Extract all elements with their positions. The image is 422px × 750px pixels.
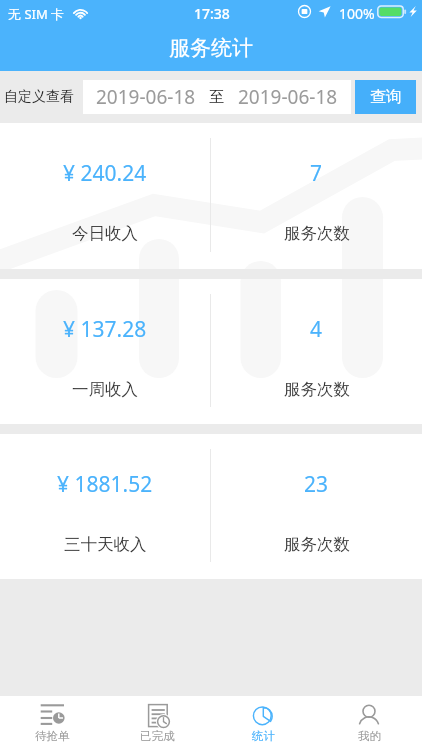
staticText: 统计 bbox=[252, 729, 275, 743]
staticText: 服务次数 bbox=[284, 223, 350, 244]
other: 已完成 bbox=[145, 703, 171, 727]
staticText: 服务次数 bbox=[284, 534, 350, 555]
button[interactable]: 我的 bbox=[316, 696, 422, 750]
staticText: 2019-06-18 bbox=[96, 84, 196, 110]
staticText: 100% bbox=[339, 4, 375, 23]
staticText: 至 bbox=[209, 88, 224, 107]
button[interactable]: 待抢单 bbox=[0, 696, 105, 750]
staticText: 2019-06-18 bbox=[238, 84, 338, 110]
staticText: 三十天收入 bbox=[64, 534, 147, 555]
staticText: 服务次数 bbox=[284, 379, 350, 400]
staticText: ¥ 137.28 bbox=[63, 315, 147, 344]
staticText: 一周收入 bbox=[72, 379, 138, 400]
staticText: 4 bbox=[310, 315, 323, 344]
button[interactable]: 已完成 bbox=[105, 696, 210, 750]
other: 统计 bbox=[250, 703, 276, 727]
staticText: 17:38 bbox=[194, 4, 230, 23]
staticText: 服务统计 bbox=[169, 35, 253, 61]
staticText: 7 bbox=[310, 159, 323, 188]
button[interactable]: ¥ 137.28 bbox=[0, 279, 422, 424]
staticText: 自定义查看 bbox=[4, 88, 74, 106]
staticText: ¥ 1881.52 bbox=[57, 470, 153, 499]
other: 我的 bbox=[356, 703, 382, 727]
button[interactable]: ¥ 240.24 bbox=[0, 123, 422, 269]
staticText: 无 SIM 卡 bbox=[8, 5, 65, 23]
button[interactable]: 2019-06-18 bbox=[83, 80, 209, 114]
button[interactable]: 查询 bbox=[355, 80, 416, 114]
staticText: 今日收入 bbox=[72, 223, 138, 244]
staticText: 23 bbox=[304, 470, 329, 499]
other: 待抢单 bbox=[40, 703, 66, 727]
button[interactable]: 2019-06-18 bbox=[224, 80, 351, 114]
staticText: 待抢单 bbox=[35, 729, 70, 743]
staticText: 已完成 bbox=[140, 729, 175, 743]
staticText: 查询 bbox=[370, 87, 402, 107]
staticText: 我的 bbox=[358, 729, 381, 743]
staticText: ¥ 240.24 bbox=[63, 159, 147, 188]
button[interactable]: ¥ 1881.52 bbox=[0, 434, 422, 579]
button[interactable]: 统计 bbox=[210, 696, 316, 750]
